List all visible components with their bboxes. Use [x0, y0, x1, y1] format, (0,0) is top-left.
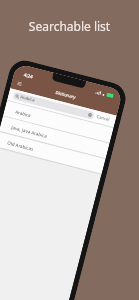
staticText: Java, Java Arabica — [11, 124, 48, 139]
button[interactable]: Arabica — [3, 100, 114, 143]
button[interactable]: Java, Java Arabica — [0, 115, 110, 158]
staticText: Dictionary — [55, 90, 76, 101]
staticText: Cancel — [96, 114, 111, 123]
staticText: Searchable list — [0, 18, 139, 34]
button[interactable]: Menu — [17, 81, 22, 86]
other: Clear — [87, 113, 92, 117]
button[interactable]: Arabica — [14, 92, 93, 119]
button[interactable]: Cancel — [95, 114, 112, 123]
staticText: 4:24 — [23, 71, 33, 79]
staticText: Arabica — [15, 108, 32, 118]
staticText: Arabica — [19, 94, 35, 104]
staticText: Old Arabicas — [7, 139, 34, 152]
button[interactable]: Old Arabicas — [0, 131, 106, 174]
